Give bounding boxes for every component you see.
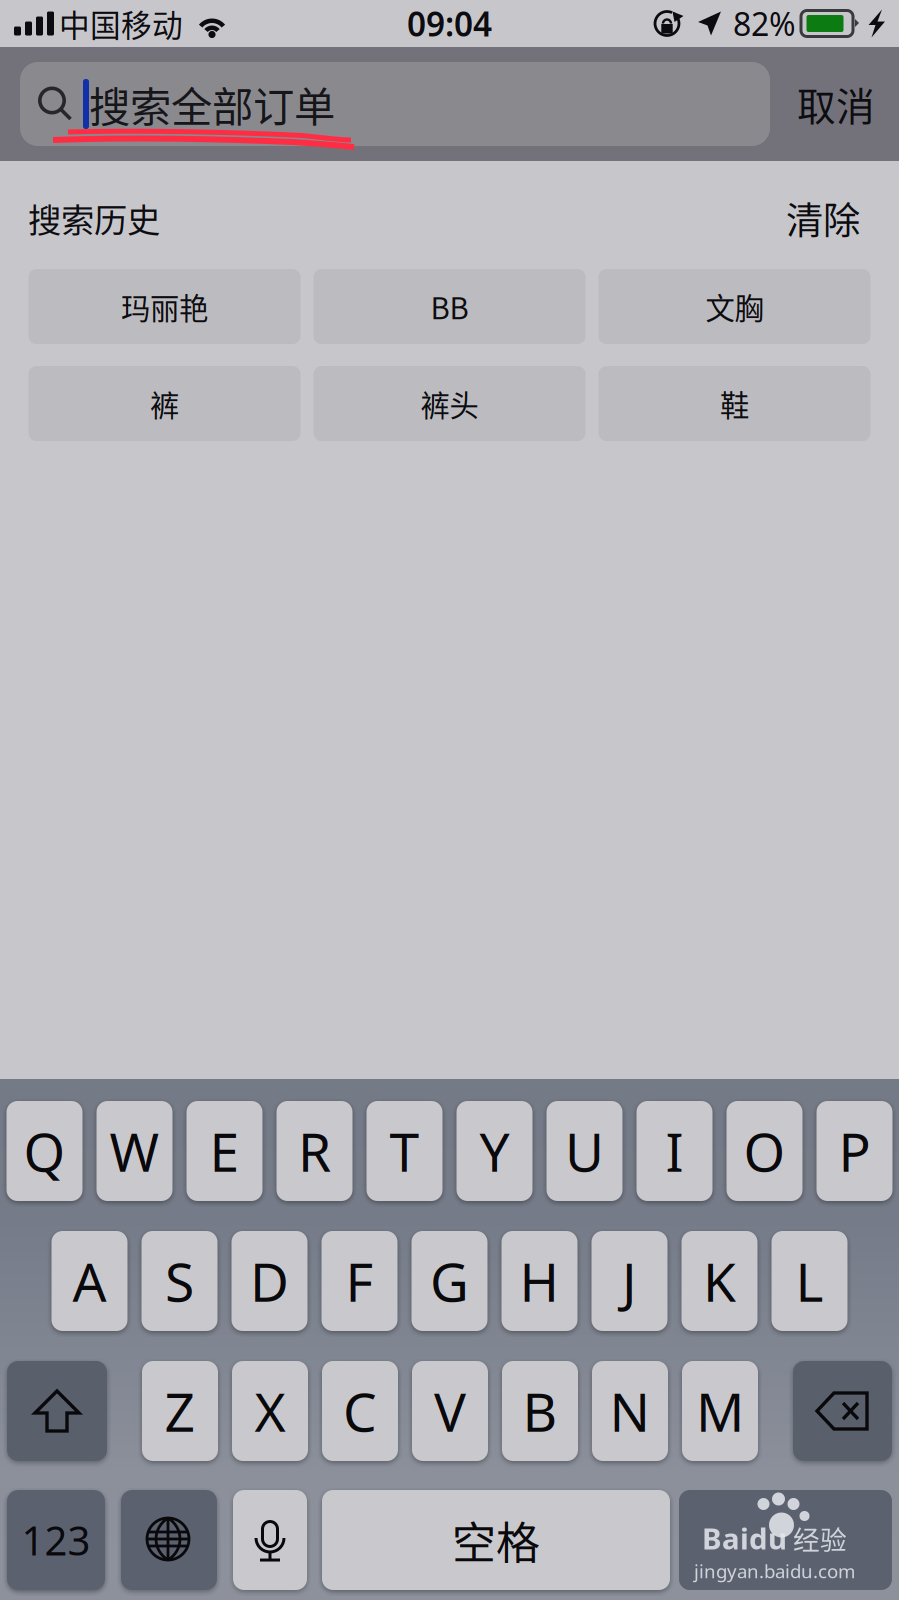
staticText: 中国移动 — [59, 1, 183, 46]
button[interactable]: K — [681, 1231, 757, 1331]
staticText: jingyan.baidu.com — [694, 1559, 855, 1583]
staticText: Q — [23, 1116, 65, 1186]
staticText: N — [609, 1376, 650, 1446]
staticText: W — [109, 1116, 159, 1186]
button[interactable]: Y — [456, 1101, 532, 1201]
button[interactable]: G — [411, 1231, 487, 1331]
staticText: G — [430, 1246, 469, 1316]
button[interactable]: C — [322, 1361, 398, 1461]
staticText: 空格 — [452, 1508, 540, 1572]
button[interactable]: Q — [6, 1101, 82, 1201]
staticText: 文胸 — [705, 285, 763, 328]
staticText: X — [254, 1376, 285, 1446]
button[interactable]: U — [546, 1101, 622, 1201]
button[interactable]: J — [591, 1231, 667, 1331]
button[interactable]: O — [726, 1101, 802, 1201]
button[interactable]: 裤头 — [313, 366, 585, 441]
staticText: 123 — [21, 1513, 90, 1566]
button[interactable]: A — [51, 1231, 127, 1331]
button[interactable]: S — [141, 1231, 217, 1331]
staticText: M — [696, 1376, 744, 1446]
staticText: C — [343, 1376, 377, 1446]
staticText: 搜索历史 — [28, 194, 160, 242]
staticText: 09:04 — [407, 1, 492, 46]
staticText: 搜索全部订单 — [89, 74, 335, 134]
button[interactable]: X — [232, 1361, 308, 1461]
staticText: Baidu — [702, 1519, 787, 1558]
button[interactable]: M — [682, 1361, 758, 1461]
button[interactable]: 鞋 — [598, 366, 870, 441]
button[interactable]: W — [96, 1101, 172, 1201]
staticText: V — [434, 1376, 466, 1446]
button[interactable]: F — [321, 1231, 397, 1331]
button[interactable]: 玛丽艳 — [28, 269, 300, 344]
staticText: J — [622, 1246, 637, 1316]
button[interactable]: 123 — [7, 1490, 105, 1590]
button[interactable]: Z — [142, 1361, 218, 1461]
staticText: 经验 — [793, 1519, 847, 1557]
staticText: R — [298, 1116, 331, 1186]
staticText: 裤头 — [420, 382, 478, 425]
button[interactable]: Return — [679, 1490, 892, 1590]
staticText: 清除 — [786, 191, 860, 245]
staticText: K — [703, 1246, 736, 1316]
button[interactable]: Delete — [793, 1361, 892, 1461]
button[interactable]: N — [592, 1361, 668, 1461]
button[interactable]: Shift — [7, 1361, 107, 1461]
button[interactable]: T — [366, 1101, 442, 1201]
button[interactable]: V — [412, 1361, 488, 1461]
staticText: 鞋 — [720, 382, 749, 425]
button[interactable]: 搜索全部订单 — [20, 62, 770, 146]
button[interactable]: H — [501, 1231, 577, 1331]
staticText: I — [665, 1116, 683, 1186]
staticText: E — [209, 1116, 239, 1186]
staticText: 裤 — [150, 382, 179, 425]
staticText: F — [345, 1246, 373, 1316]
staticText: P — [838, 1116, 870, 1186]
button[interactable]: 空格 — [322, 1490, 670, 1590]
staticText: BB — [430, 285, 468, 328]
button[interactable]: E — [186, 1101, 262, 1201]
button[interactable]: L — [771, 1231, 847, 1331]
button[interactable]: B — [502, 1361, 578, 1461]
button[interactable]: 文胸 — [598, 269, 870, 344]
staticText: Z — [164, 1376, 195, 1446]
staticText: Y — [479, 1116, 509, 1186]
button[interactable]: R — [276, 1101, 352, 1201]
staticText: U — [565, 1116, 604, 1186]
staticText: 取消 — [797, 76, 875, 132]
staticText: L — [795, 1246, 823, 1316]
staticText: D — [250, 1246, 289, 1316]
button[interactable]: 取消 — [780, 62, 892, 146]
button[interactable]: 清除 — [786, 191, 860, 245]
button[interactable]: BB — [313, 269, 585, 344]
staticText: S — [165, 1246, 194, 1316]
button[interactable]: I — [636, 1101, 712, 1201]
button[interactable]: 裤 — [28, 366, 300, 441]
button[interactable]: Next keyboard — [121, 1490, 217, 1590]
staticText: 82% — [733, 2, 796, 45]
button[interactable]: Dictation — [233, 1490, 307, 1590]
staticText: B — [522, 1376, 557, 1446]
staticText: T — [389, 1116, 419, 1186]
staticText: H — [519, 1246, 559, 1316]
button[interactable]: D — [231, 1231, 307, 1331]
button[interactable]: P — [816, 1101, 892, 1201]
staticText: O — [743, 1116, 785, 1186]
staticText: 玛丽艳 — [121, 285, 208, 328]
staticText: A — [72, 1246, 106, 1316]
